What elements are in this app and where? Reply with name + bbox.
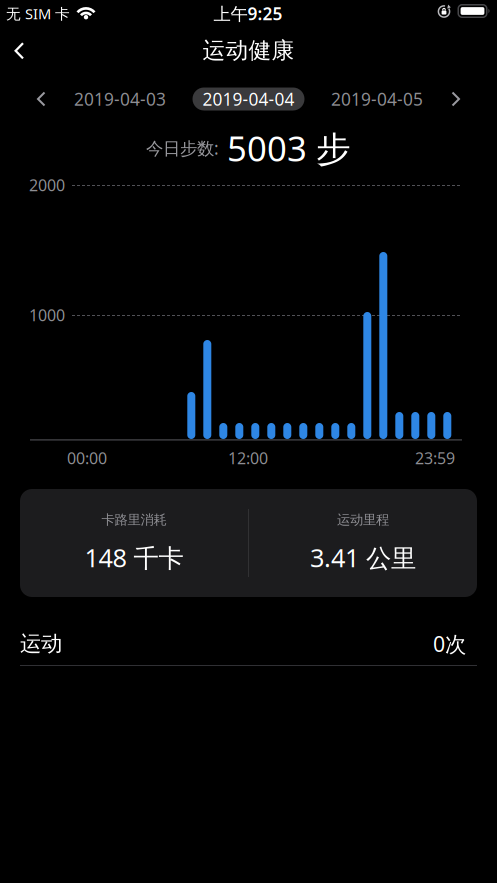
staticText: 3.41 公里 xyxy=(310,541,416,574)
button[interactable]: 2019-04-04 xyxy=(192,87,304,110)
staticText: 上午9:25 xyxy=(213,2,282,25)
button[interactable]: 前一天 xyxy=(26,84,56,114)
staticText: 2019-04-03 xyxy=(74,87,166,110)
staticText: 148 千卡 xyxy=(85,541,184,574)
button[interactable]: 后一天 xyxy=(441,84,471,114)
staticText: 2000 xyxy=(29,174,65,196)
staticText: 0次 xyxy=(433,629,466,658)
button[interactable]: 2019-04-03 xyxy=(74,87,166,110)
staticText: 23:59 xyxy=(415,447,455,469)
staticText: 运动健康 xyxy=(202,37,294,64)
button[interactable]: 2019-04-05 xyxy=(331,87,423,110)
button[interactable]: 返回 xyxy=(0,28,44,72)
staticText: 运动 xyxy=(20,630,62,657)
staticText: 12:00 xyxy=(228,447,268,469)
staticText: 00:00 xyxy=(67,447,107,469)
button[interactable]: 运动 xyxy=(0,597,497,666)
staticText: 卡路里消耗 xyxy=(102,512,167,528)
staticText: 运动里程 xyxy=(337,512,389,528)
staticText: 1000 xyxy=(29,304,65,326)
staticText: 2019-04-04 xyxy=(202,87,294,110)
staticText: 5003 步 xyxy=(227,125,351,171)
staticText: 今日步数: xyxy=(146,136,219,159)
staticText: 2019-04-05 xyxy=(331,87,423,110)
staticText: 无 SIM 卡 xyxy=(6,4,70,23)
